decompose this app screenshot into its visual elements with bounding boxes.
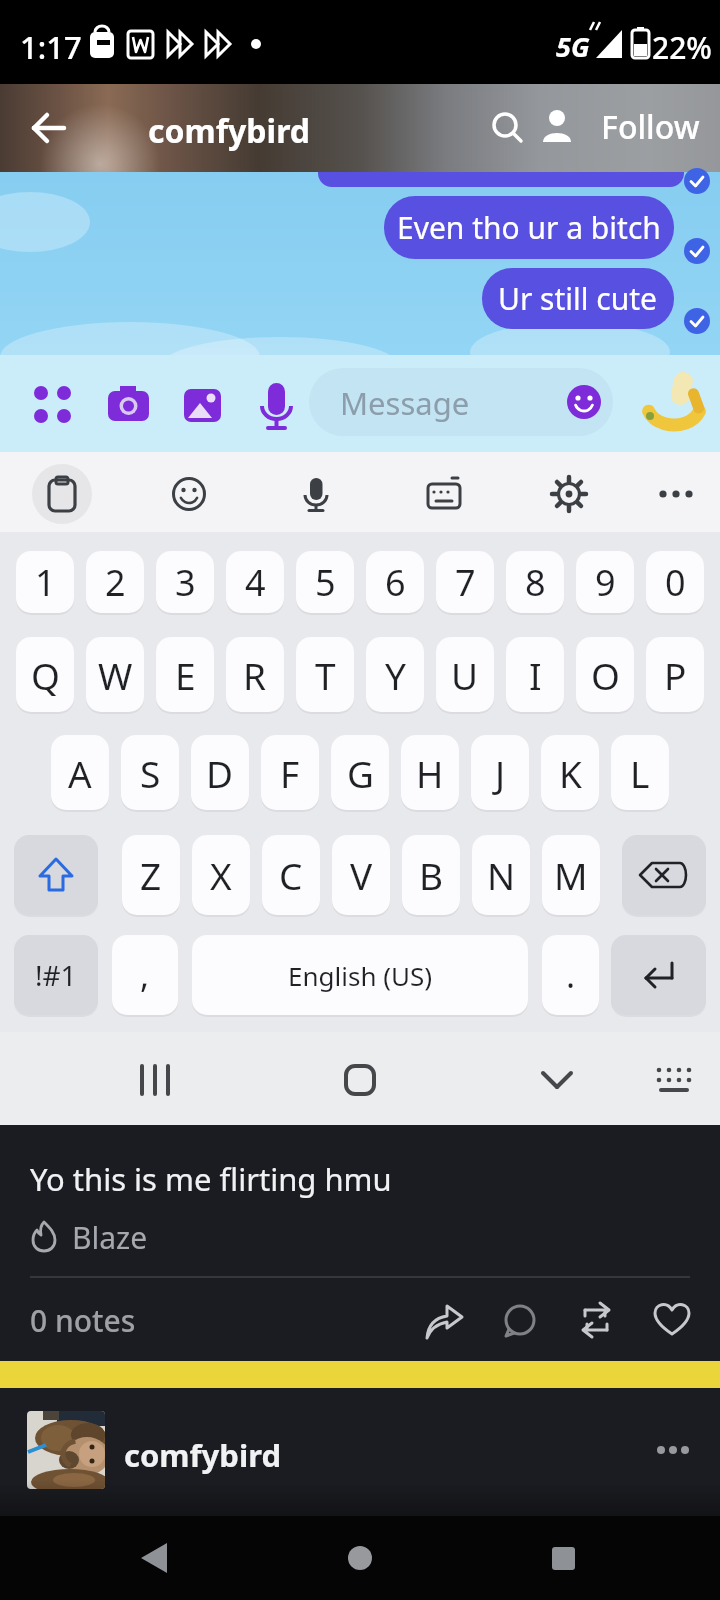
staticText: W [98, 650, 133, 700]
staticText: 0 notes [30, 1300, 136, 1341]
button[interactable] [530, 1526, 600, 1590]
staticText: Y [385, 650, 406, 700]
staticText: comfybird [124, 1434, 281, 1476]
button[interactable]: 4 [226, 551, 284, 613]
staticText: 5G [556, 28, 590, 65]
staticText: I [529, 650, 542, 700]
button[interactable] [622, 835, 706, 915]
button[interactable] [572, 1295, 626, 1349]
button[interactable]: , [112, 935, 178, 1015]
button[interactable] [496, 1295, 550, 1349]
button[interactable]: Blaze [24, 1210, 174, 1266]
staticText: 4 [245, 558, 266, 607]
staticText: Follow [601, 105, 700, 149]
staticText: J [495, 748, 506, 798]
button[interactable]: Follow [590, 92, 710, 162]
button[interactable]: O [576, 637, 634, 712]
button[interactable]: !#1 [14, 935, 98, 1015]
button[interactable]: P [646, 637, 704, 712]
button[interactable] [482, 100, 534, 156]
button[interactable]: B [402, 835, 460, 915]
staticText: Blaze [72, 1217, 148, 1258]
button[interactable] [650, 1420, 710, 1480]
staticText: T [315, 650, 336, 700]
button[interactable]: H [401, 735, 459, 810]
staticText: 5 [315, 558, 336, 607]
button[interactable]: R [226, 637, 284, 712]
button[interactable]: 0 [646, 551, 704, 613]
staticText: 8 [525, 558, 546, 607]
button[interactable]: M [542, 835, 600, 915]
button[interactable] [420, 1295, 474, 1349]
staticText: 2 [105, 558, 126, 607]
button[interactable]: A [51, 735, 109, 810]
button[interactable] [27, 1411, 105, 1489]
staticText: Message [340, 382, 470, 424]
staticText: comfybird [148, 109, 311, 153]
button[interactable]: F [261, 735, 319, 810]
staticText: X [210, 850, 232, 900]
button[interactable]: 3 [156, 551, 214, 613]
button[interactable]: 5 [296, 551, 354, 613]
staticText: English (US) [288, 958, 433, 993]
button[interactable]: 2 [86, 551, 144, 613]
staticText: 1:17 [20, 26, 82, 68]
button[interactable]: Message [309, 368, 613, 436]
button[interactable]: J [471, 735, 529, 810]
staticText: Yo this is me flirting hmu [30, 1158, 392, 1200]
button[interactable]: 6 [366, 551, 424, 613]
staticText: 7 [455, 558, 476, 607]
staticText: D [206, 748, 234, 798]
button[interactable]: . [542, 935, 599, 1015]
staticText: V [350, 850, 373, 900]
button[interactable]: E [156, 637, 214, 712]
button[interactable]: U [436, 637, 494, 712]
staticText: Ur still cute [498, 278, 658, 319]
button[interactable]: L [611, 735, 669, 810]
staticText: S [140, 748, 161, 798]
staticText: C [279, 850, 303, 900]
staticText: M [554, 850, 588, 900]
staticText: G [347, 748, 374, 798]
button[interactable]: K [541, 735, 599, 810]
staticText: Q [31, 650, 60, 700]
staticText: 3 [175, 558, 196, 607]
button[interactable] [534, 100, 582, 156]
button[interactable] [120, 1526, 190, 1590]
staticText: 0 [665, 558, 686, 607]
staticText: B [419, 850, 444, 900]
button[interactable] [20, 100, 76, 156]
button[interactable]: Q [16, 637, 74, 712]
staticText: H [416, 748, 444, 798]
button[interactable] [648, 1295, 702, 1349]
staticText: O [591, 650, 620, 700]
button[interactable]: 1 [16, 551, 74, 613]
staticText: R [243, 650, 267, 700]
button[interactable]: W [86, 637, 144, 712]
button[interactable]: English (US) [192, 935, 528, 1015]
button[interactable]: 9 [576, 551, 634, 613]
button[interactable] [325, 1526, 395, 1590]
button[interactable]: V [332, 835, 390, 915]
button[interactable]: I [506, 637, 564, 712]
staticText: !#1 [35, 956, 77, 994]
staticText: K [559, 748, 582, 798]
button[interactable]: D [191, 735, 249, 810]
staticText: U [451, 650, 479, 700]
button[interactable]: Y [366, 637, 424, 712]
staticText: , [140, 952, 150, 998]
button[interactable]: T [296, 637, 354, 712]
button[interactable] [14, 835, 98, 915]
button[interactable]: S [121, 735, 179, 810]
staticText: 9 [595, 558, 616, 607]
button[interactable]: 7 [436, 551, 494, 613]
button[interactable]: X [192, 835, 250, 915]
button[interactable]: N [472, 835, 530, 915]
button[interactable] [611, 935, 706, 1015]
button[interactable]: G [331, 735, 389, 810]
button[interactable]: C [262, 835, 320, 915]
staticText: 22% [652, 27, 712, 68]
button[interactable]: Z [122, 835, 180, 915]
button[interactable]: 8 [506, 551, 564, 613]
staticText: F [280, 748, 300, 798]
